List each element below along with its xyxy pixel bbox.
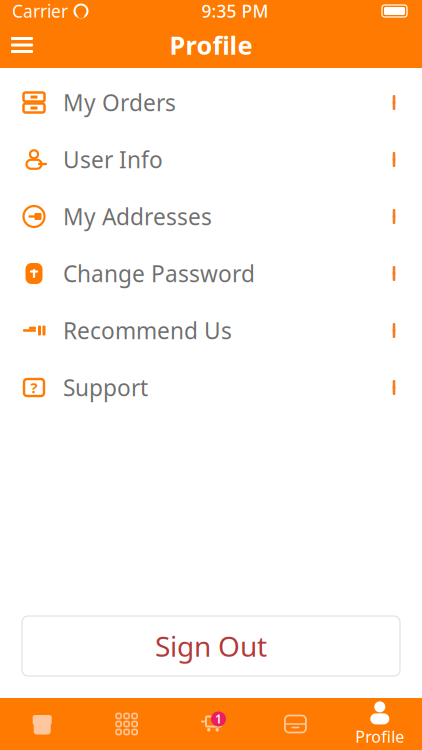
staticText: 1 bbox=[215, 711, 222, 727]
staticText: Profile bbox=[169, 28, 252, 62]
button[interactable]: ? bbox=[0, 359, 422, 416]
button[interactable]: Categories bbox=[84, 698, 169, 750]
button[interactable]: My Orders bbox=[0, 74, 422, 131]
staticText: My Addresses bbox=[63, 201, 212, 231]
button[interactable]: Recommend Us bbox=[0, 302, 422, 359]
staticText: Recommend Us bbox=[63, 315, 232, 345]
staticText: My Orders bbox=[63, 87, 176, 117]
staticText: Change Password bbox=[63, 258, 255, 288]
staticText: 9:35 PM bbox=[201, 0, 268, 22]
button[interactable]: User Info bbox=[0, 131, 422, 188]
staticText: Carrier bbox=[12, 0, 68, 22]
staticText: Profile bbox=[355, 726, 404, 747]
button[interactable]: Home bbox=[0, 698, 84, 750]
staticText: Sign Out bbox=[155, 627, 267, 665]
button[interactable]: Menu bbox=[0, 23, 44, 67]
staticText: User Info bbox=[63, 144, 163, 174]
button[interactable]: Cart, 1 item bbox=[169, 698, 253, 750]
button[interactable]: Sign Out bbox=[22, 616, 400, 676]
staticText: ? bbox=[30, 378, 37, 397]
staticText: Support bbox=[63, 372, 148, 402]
button[interactable]: Change Password bbox=[0, 245, 422, 302]
button[interactable]: Inbox bbox=[253, 698, 338, 750]
button[interactable]: Profile bbox=[338, 698, 422, 750]
button[interactable]: My Addresses bbox=[0, 188, 422, 245]
